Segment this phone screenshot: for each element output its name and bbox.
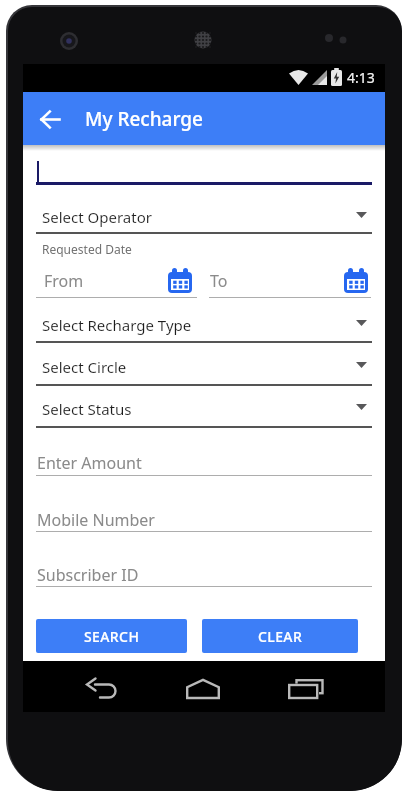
staticText: Enter Amount — [37, 452, 142, 474]
staticText: Select Circle — [42, 357, 127, 377]
staticText: 4:13 — [347, 68, 375, 87]
staticText: Subscriber ID — [37, 564, 139, 586]
button[interactable]: SEARCH — [36, 619, 187, 653]
staticText: Mobile Number — [37, 509, 155, 531]
button[interactable] — [36, 263, 197, 298]
staticText: CLEAR — [258, 627, 303, 646]
button[interactable] — [36, 351, 372, 384]
button[interactable]: CLEAR — [202, 619, 358, 653]
button[interactable] — [36, 560, 372, 588]
button[interactable] — [77, 667, 125, 711]
button[interactable] — [179, 667, 227, 711]
staticText: To — [210, 270, 228, 292]
staticText: Select Status — [42, 399, 132, 419]
button[interactable] — [36, 448, 372, 476]
staticText: Select Operator — [42, 207, 152, 227]
staticText: My Recharge — [85, 106, 203, 132]
staticText: Requested Date — [42, 241, 132, 257]
button[interactable] — [209, 263, 371, 298]
button[interactable] — [36, 505, 372, 533]
button[interactable] — [36, 393, 372, 426]
button[interactable] — [31, 100, 69, 138]
button[interactable] — [282, 667, 330, 711]
staticText: From — [44, 270, 84, 292]
button[interactable] — [36, 309, 372, 342]
staticText: Select Recharge Type — [42, 315, 192, 335]
button[interactable] — [36, 200, 372, 233]
staticText: SEARCH — [84, 627, 140, 646]
